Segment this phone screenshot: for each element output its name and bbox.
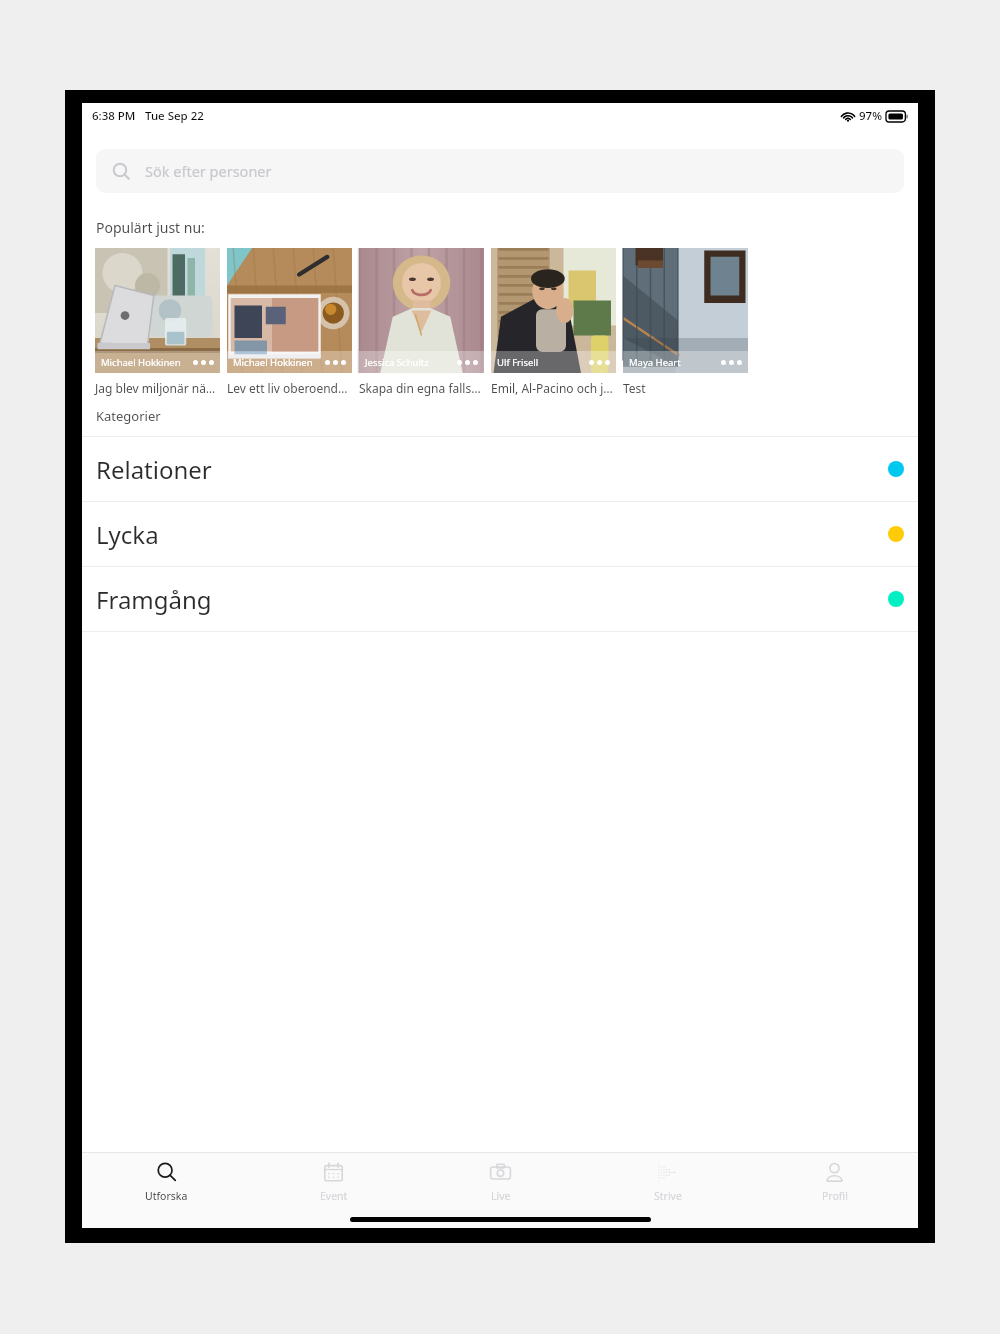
staticText: Populärt just nu:	[96, 218, 205, 237]
staticText: Maya Heart	[629, 356, 681, 369]
button[interactable]: Jessica Schultz	[359, 248, 484, 396]
staticText: Kategorier	[96, 407, 161, 425]
staticText: 6:38 PM	[92, 108, 136, 124]
staticText: Relationer	[96, 453, 212, 486]
staticText: Skapa din egna fallsk…	[359, 380, 484, 396]
staticText: Utforska	[145, 1189, 188, 1203]
button[interactable]: Sök efter personer	[96, 149, 904, 193]
staticText: Sök efter personer	[145, 161, 272, 181]
button[interactable]: Event	[250, 1153, 417, 1210]
button[interactable]: Lycka	[82, 502, 918, 566]
staticText: Lycka	[96, 518, 159, 551]
button[interactable]: Michael Hokkinen	[227, 248, 352, 396]
button[interactable]: Ulf Frisell	[491, 248, 616, 396]
staticText: Framgång	[96, 583, 212, 616]
button[interactable]: Utforska	[82, 1153, 250, 1210]
staticText: Emil, Al-Pacino och jag	[491, 380, 616, 396]
button[interactable]: Maya Heart	[623, 248, 748, 396]
staticText: Strive	[654, 1189, 682, 1203]
staticText: Test	[623, 380, 646, 396]
button[interactable]: Michael Hokkinen	[95, 248, 220, 396]
staticText: Tue Sep 22	[145, 108, 204, 124]
staticText: Lev ett liv oberoende…	[227, 380, 352, 396]
button[interactable]: Strive	[584, 1153, 751, 1210]
staticText: Live	[491, 1189, 511, 1203]
staticText: Michael Hokkinen	[101, 356, 181, 369]
staticText: Event	[320, 1189, 348, 1203]
staticText: Jag blev miljonär när j…	[95, 380, 220, 396]
button[interactable]: Relationer	[82, 437, 918, 501]
button[interactable]: Framgång	[82, 567, 918, 631]
staticText: Ulf Frisell	[497, 356, 539, 369]
button[interactable]: Profil	[751, 1153, 918, 1210]
staticText: Profil	[822, 1189, 848, 1203]
staticText: 97%	[859, 108, 882, 124]
staticText: Michael Hokkinen	[233, 356, 313, 369]
button[interactable]: Live	[417, 1153, 584, 1210]
staticText: Jessica Schultz	[365, 356, 429, 369]
